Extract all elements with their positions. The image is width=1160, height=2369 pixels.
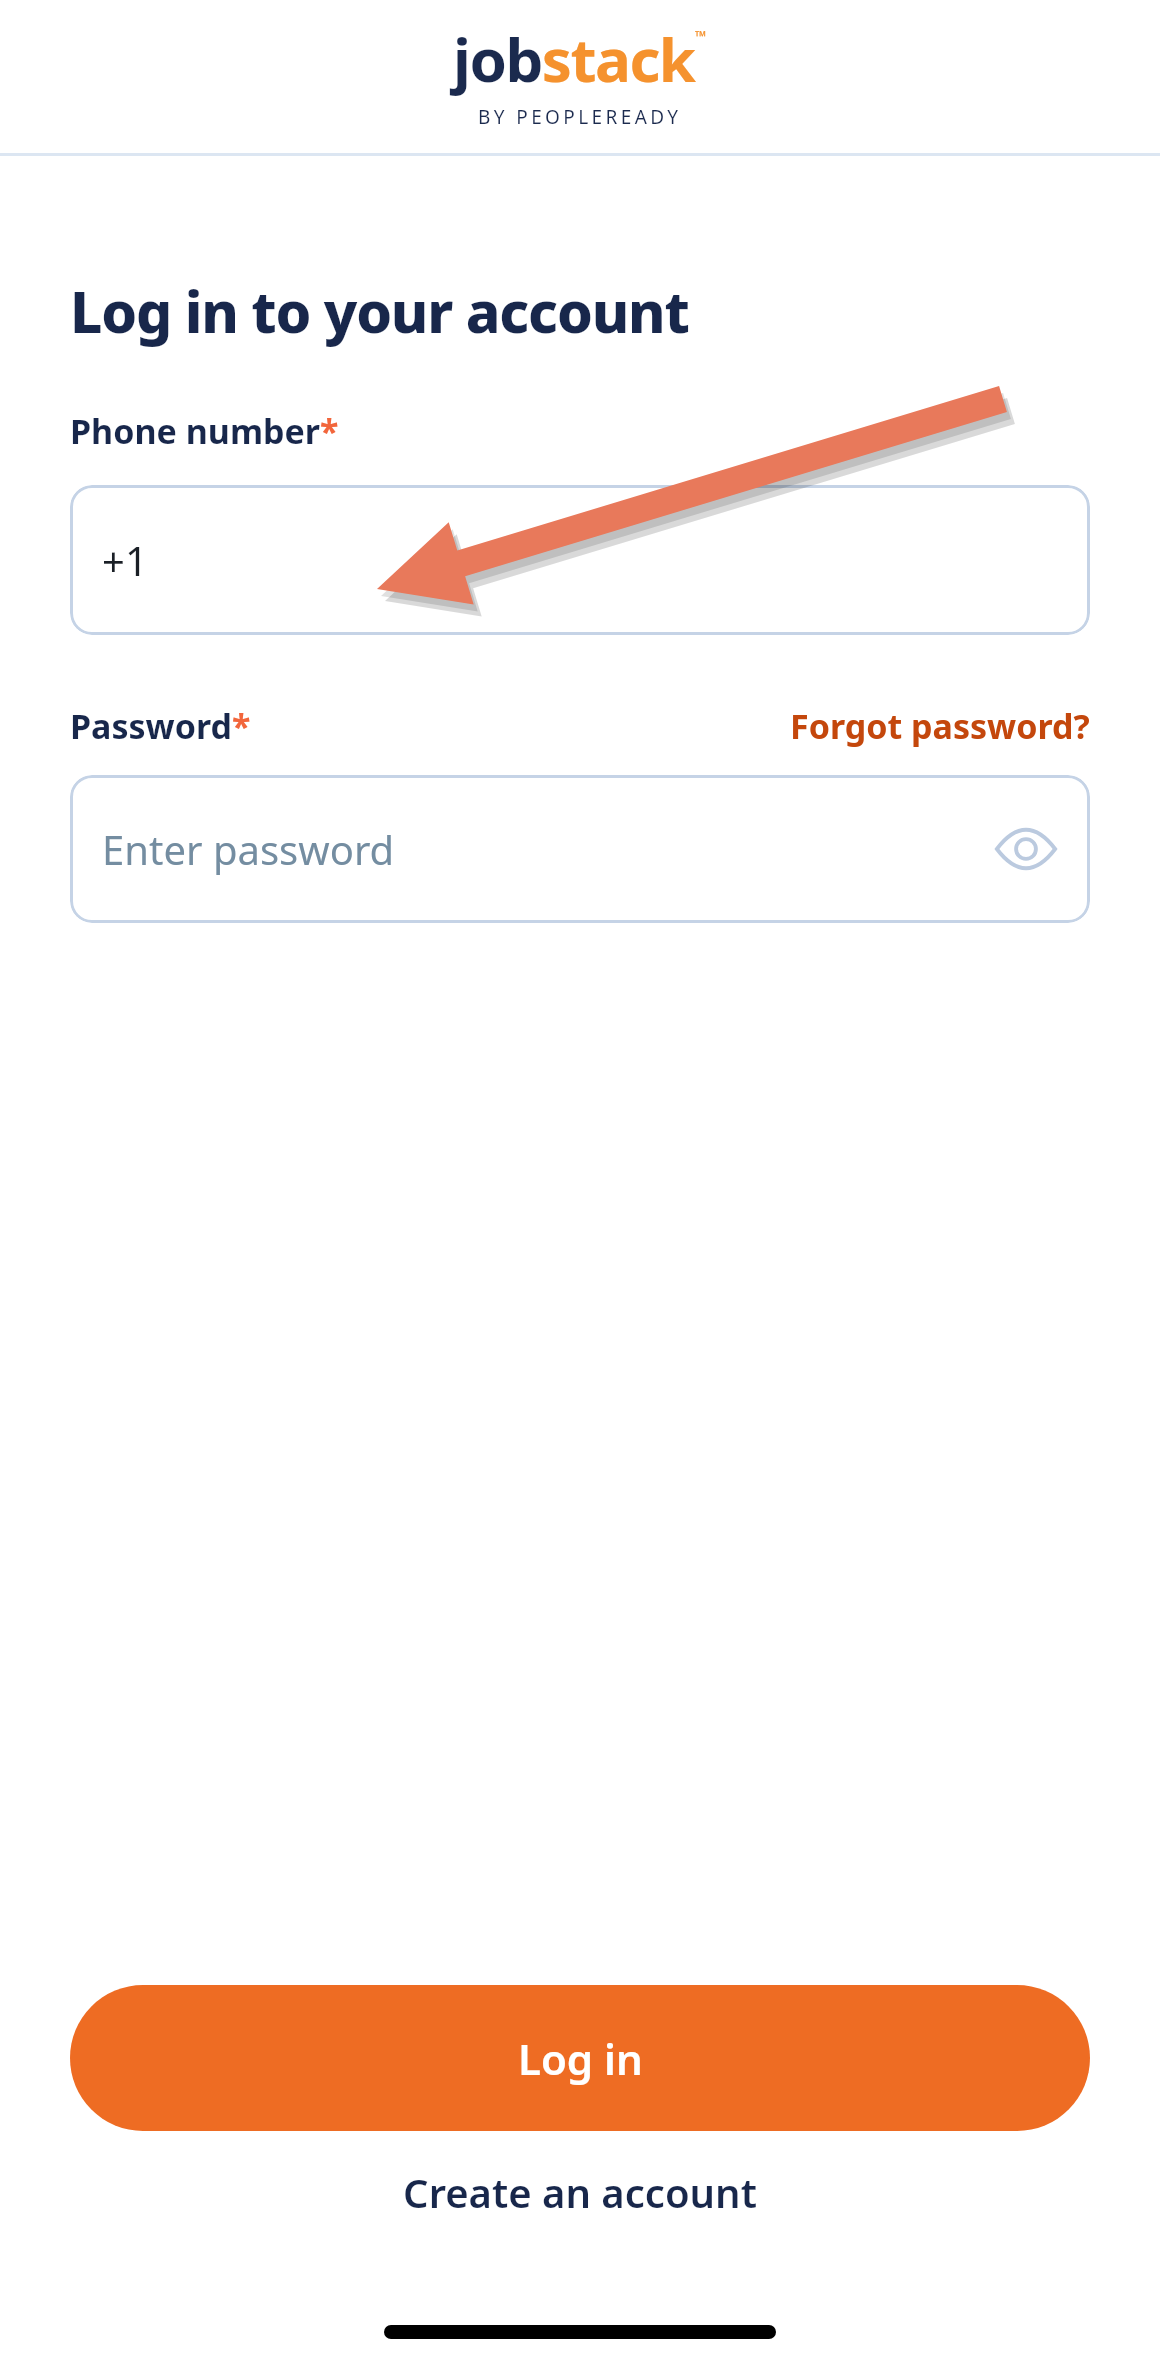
staticText: Log in to your account: [70, 272, 689, 350]
button[interactable]: +1: [70, 485, 1090, 635]
staticText: Enter password: [102, 822, 395, 876]
staticText: Log in: [518, 2030, 643, 2087]
staticText: jobstack: [453, 18, 695, 100]
staticText: Phone number*: [70, 408, 339, 454]
button[interactable]: Enter password: [70, 775, 1090, 923]
button[interactable]: Forgot password?: [790, 703, 1090, 749]
staticText: ™: [695, 26, 707, 46]
button[interactable]: Log in: [70, 1985, 1090, 2131]
button[interactable]: Show password: [988, 811, 1064, 887]
button[interactable]: Create an account: [70, 2165, 1090, 2219]
staticText: Forgot password?: [790, 703, 1090, 749]
staticText: +1: [102, 533, 148, 587]
staticText: Create an account: [403, 2165, 757, 2219]
staticText: Password*: [70, 703, 251, 749]
staticText: BY PEOPLEREADY: [478, 104, 682, 130]
